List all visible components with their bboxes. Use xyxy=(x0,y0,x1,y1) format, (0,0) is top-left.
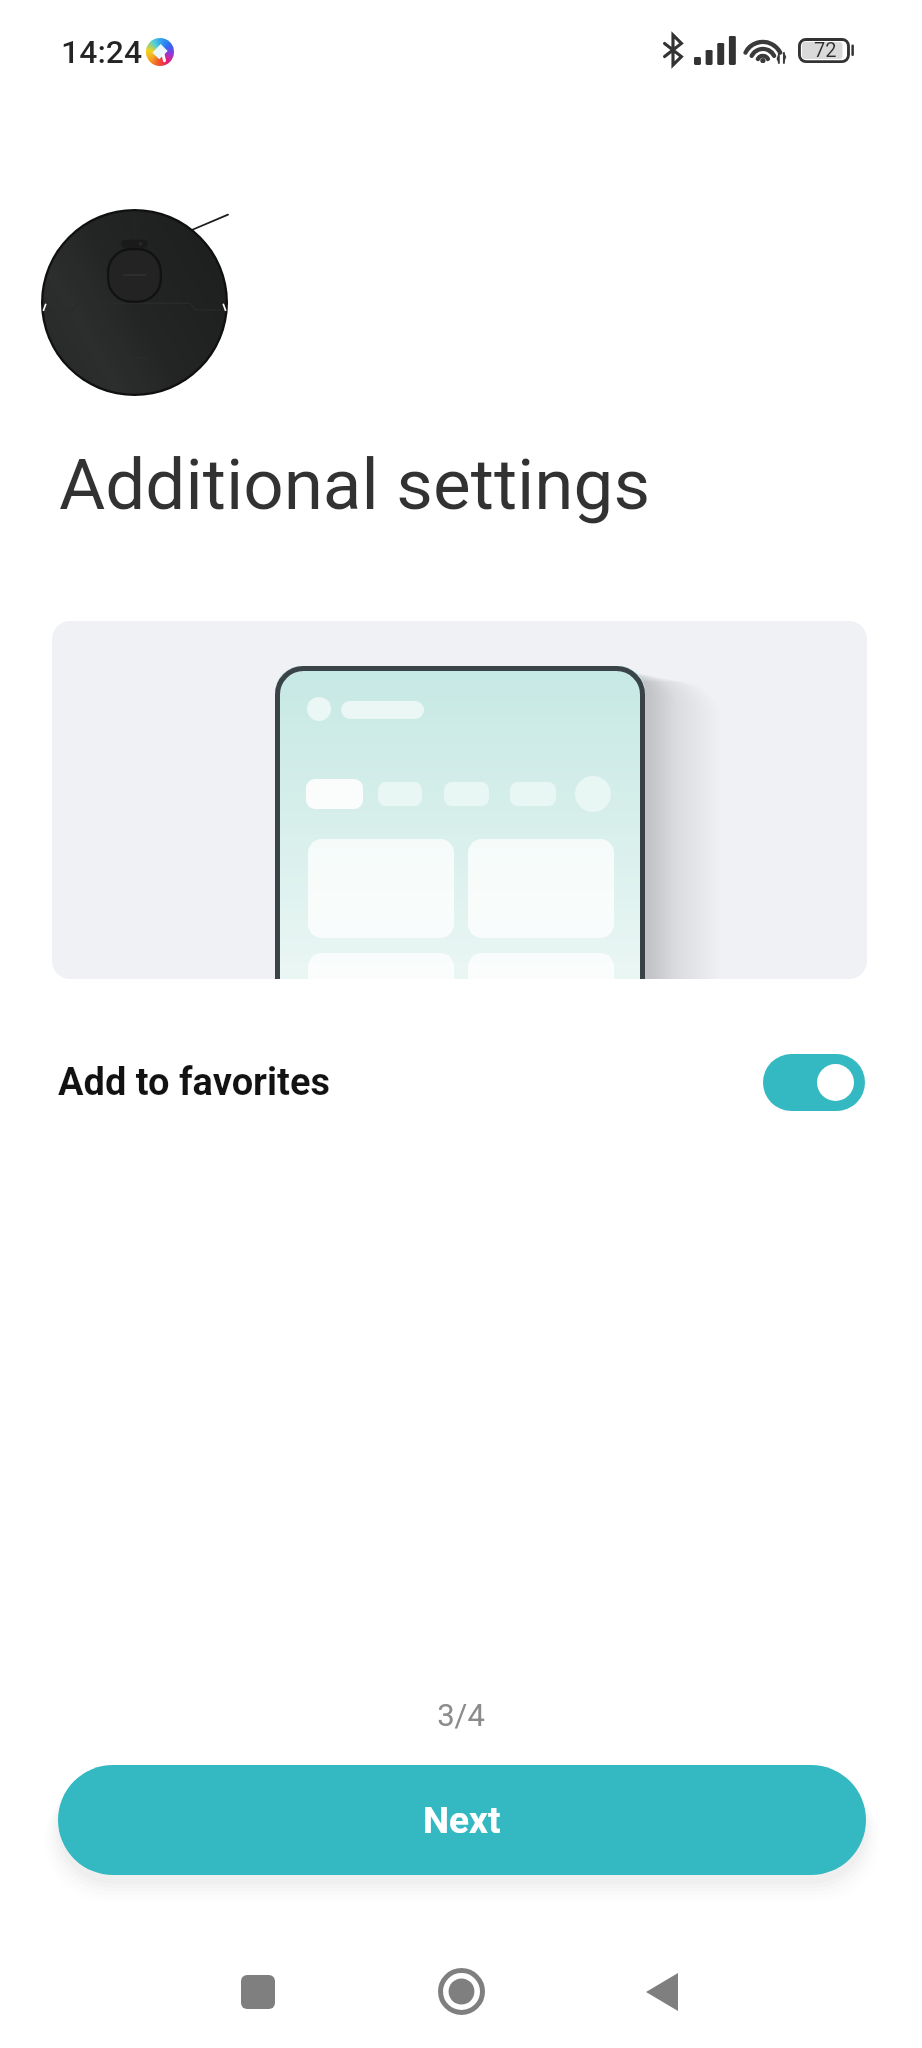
staticText: 3/4 xyxy=(0,1697,922,1733)
button[interactable]: Back xyxy=(612,1942,712,2042)
button[interactable]: Add to favorites toggle xyxy=(763,1054,865,1111)
staticText: 72 xyxy=(814,38,837,61)
button[interactable]: Recent apps xyxy=(208,1942,308,2042)
staticText: 14:24 xyxy=(61,33,143,71)
staticText: Next xyxy=(423,1799,501,1842)
staticText: Additional settings xyxy=(59,443,651,526)
button[interactable]: Add to favorites xyxy=(0,1040,922,1124)
button[interactable]: Next xyxy=(58,1765,866,1875)
button[interactable]: Home xyxy=(411,1941,511,2041)
staticText: Add to favorites xyxy=(58,1060,330,1105)
